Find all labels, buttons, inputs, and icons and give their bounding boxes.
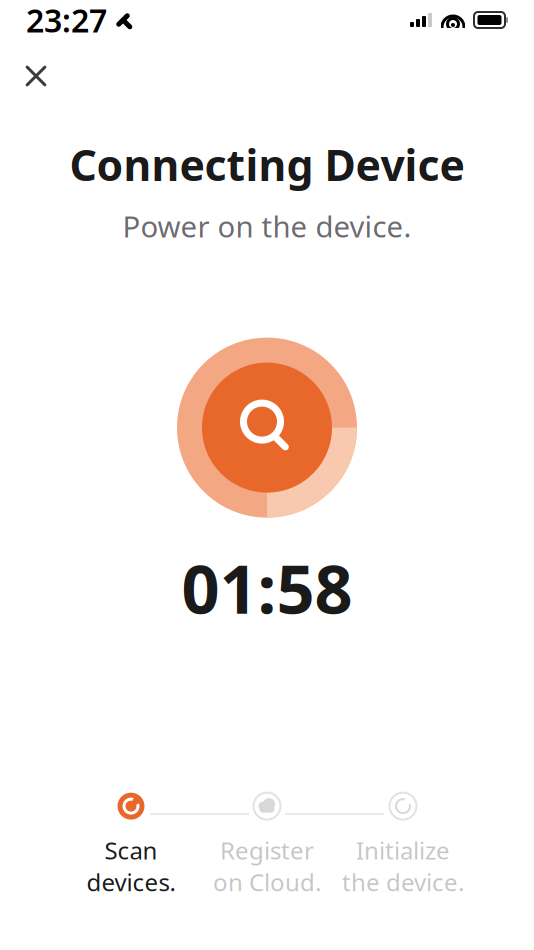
staticText: Register <box>220 834 314 866</box>
staticText: Scan <box>104 834 157 866</box>
staticText: Power on the device. <box>122 207 411 246</box>
staticText: the device. <box>342 866 464 898</box>
button[interactable]: Scan <box>63 792 199 898</box>
button[interactable]: Initialize <box>335 792 471 898</box>
staticText: Initialize <box>356 834 450 866</box>
button[interactable]: Close <box>10 50 62 102</box>
button[interactable]: Register <box>199 792 335 898</box>
staticText: Connecting Device <box>69 136 464 193</box>
staticText: on Cloud. <box>213 866 321 898</box>
staticText: 01:58 <box>181 544 352 632</box>
staticText: 23:27 <box>26 0 107 41</box>
staticText: devices. <box>86 866 175 898</box>
